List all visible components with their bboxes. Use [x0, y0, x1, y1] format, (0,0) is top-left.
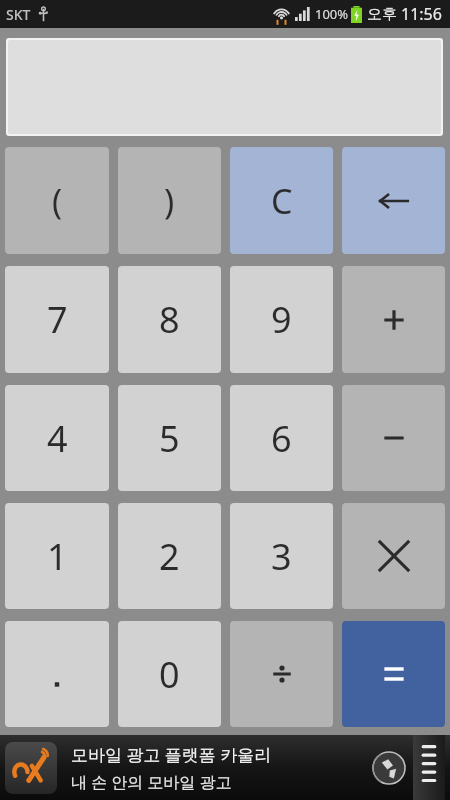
staticText: 11:56 [401, 3, 442, 25]
button[interactable]: 8 [118, 266, 221, 373]
staticText: C [271, 178, 293, 224]
button[interactable]: 2 [118, 503, 221, 609]
staticText: 내 손 안의 모바일 광고 [71, 771, 232, 793]
staticText: 오후 [367, 5, 397, 24]
staticText: SKT [6, 5, 31, 24]
button[interactable]: Open web [365, 744, 413, 792]
button[interactable]: Plus [342, 266, 445, 373]
staticText: ) [164, 178, 175, 224]
staticText: 3 [271, 532, 292, 581]
staticText: 모바일 광고 플랫폼 카울리 [71, 743, 272, 766]
button[interactable]: Equals [342, 621, 445, 727]
button[interactable]: cauly [413, 735, 445, 800]
button[interactable]: 모바일 광고 플랫폼 카울리 [0, 735, 450, 800]
button[interactable]: 5 [118, 385, 221, 491]
button[interactable]: ) [118, 147, 221, 254]
staticText: 9 [271, 295, 292, 344]
staticText: 2 [159, 532, 180, 581]
button[interactable]: 0 [118, 621, 221, 727]
button[interactable]: ( [5, 147, 109, 254]
staticText: 100% [315, 5, 349, 23]
staticText: 5 [159, 414, 180, 463]
staticText: 8 [159, 295, 180, 344]
staticText: 0 [159, 650, 180, 699]
button[interactable]: 6 [230, 385, 333, 491]
button[interactable]: Multiply [342, 503, 445, 609]
button[interactable]: Minus [342, 385, 445, 491]
button[interactable]: Divide [230, 621, 333, 727]
button[interactable]: 1 [5, 503, 109, 609]
button[interactable]: 7 [5, 266, 109, 373]
staticText: ( [52, 178, 63, 224]
button[interactable]: Decimal point [5, 621, 109, 727]
button[interactable]: Backspace [342, 147, 445, 254]
button[interactable]: 9 [230, 266, 333, 373]
button[interactable]: C [230, 147, 333, 254]
button[interactable]: 4 [5, 385, 109, 491]
staticText: 6 [271, 414, 292, 463]
button[interactable]: 3 [230, 503, 333, 609]
staticText: 1 [47, 532, 68, 581]
staticText: 7 [47, 295, 68, 344]
staticText: 4 [47, 414, 68, 463]
